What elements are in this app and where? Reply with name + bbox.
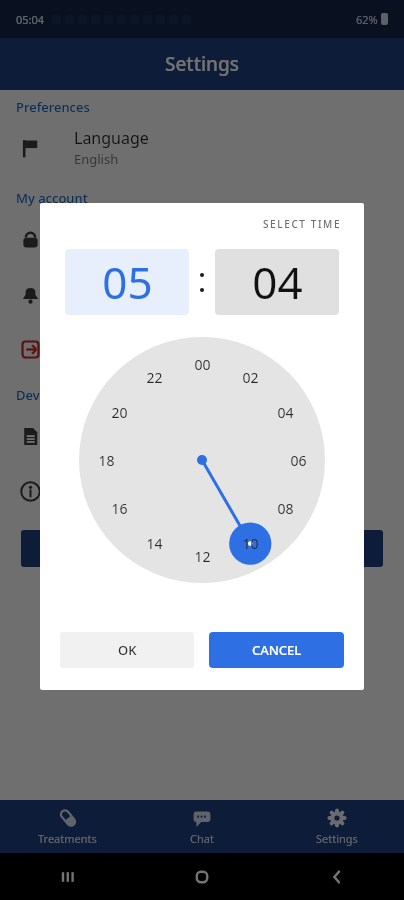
button[interactable]: Clock face, select hour [79, 337, 325, 583]
staticText: 04 [252, 252, 303, 312]
staticText: 02 [242, 368, 259, 387]
staticText: 22 [146, 368, 163, 387]
staticText: 12 [194, 547, 211, 566]
button[interactable]: Treatments [0, 800, 134, 853]
staticText: Device [16, 386, 57, 404]
staticText: 06 [290, 451, 307, 470]
button[interactable]: Password [0, 211, 404, 266]
staticText: About [74, 480, 120, 502]
staticText: 62% [356, 12, 378, 27]
staticText: 04 [277, 403, 294, 422]
button[interactable]: Reports [0, 408, 404, 463]
staticText: 00 [194, 355, 211, 374]
staticText: 10 [242, 534, 259, 553]
button[interactable]: Recent apps [0, 853, 134, 900]
staticText: CANCEL [252, 641, 302, 659]
staticText: 20 [111, 403, 128, 422]
button[interactable]: SAVE [21, 530, 383, 567]
staticText: English [74, 150, 119, 168]
staticText: 14 [146, 534, 163, 553]
staticText: Chat [190, 831, 214, 846]
button[interactable]: CANCEL [209, 632, 344, 668]
staticText: Treatments [38, 831, 97, 846]
staticText: My account [16, 189, 88, 207]
staticText: Preferences [16, 98, 90, 116]
staticText: 05:04 [16, 12, 45, 27]
staticText: Notifications [74, 283, 170, 305]
staticText: 08 [277, 499, 294, 518]
button[interactable]: Home [134, 853, 269, 900]
button[interactable]: About [0, 463, 404, 518]
staticText: Language [74, 127, 149, 149]
staticText: SELECT TIME [263, 217, 342, 231]
button[interactable]: 05 [65, 249, 189, 315]
button[interactable]: Settings [269, 800, 404, 853]
button[interactable]: Chat [134, 800, 269, 853]
button[interactable]: Log out [0, 321, 404, 376]
button[interactable]: 04 [215, 249, 339, 315]
button[interactable]: Back [269, 853, 404, 900]
button[interactable]: Language [0, 120, 404, 175]
staticText: 18 [98, 451, 115, 470]
staticText: 16 [111, 499, 128, 518]
staticText: SAVE [187, 540, 218, 558]
staticText: Settings [165, 51, 239, 77]
button[interactable]: OK [60, 632, 194, 668]
button[interactable]: Settings [0, 38, 404, 90]
staticText: 05 [102, 252, 153, 312]
staticText: Settings [316, 831, 358, 846]
button[interactable]: Notifications [0, 266, 404, 321]
staticText: Reports [74, 425, 133, 447]
staticText: Password [74, 228, 147, 250]
staticText: OK [118, 641, 137, 659]
